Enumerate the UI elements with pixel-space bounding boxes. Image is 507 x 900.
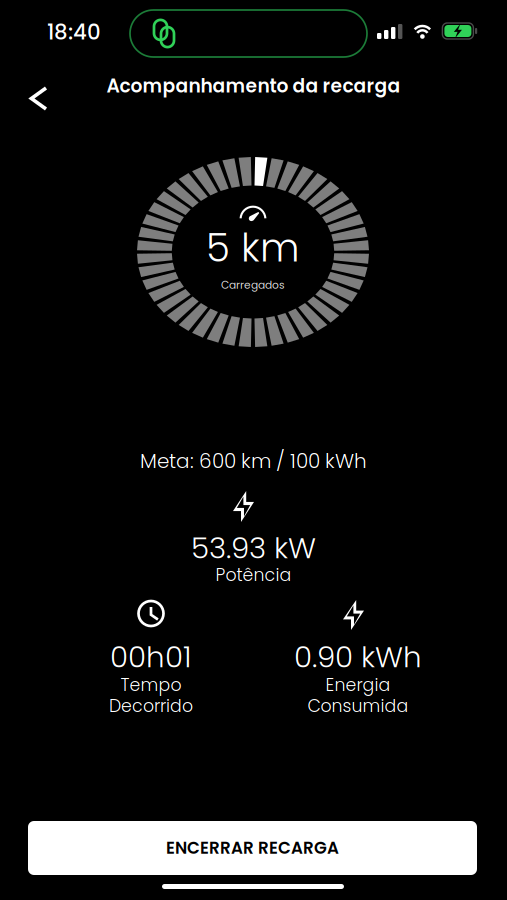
staticText: Potência	[215, 563, 291, 587]
staticText: Acompanhamento da recarga	[106, 73, 400, 99]
staticText: 18:40	[47, 17, 101, 47]
staticText: 53.93 kW	[191, 527, 316, 569]
staticText: 5 km	[206, 221, 300, 275]
staticText: Tempo	[120, 673, 181, 697]
staticText: 0.90 kWh	[294, 636, 422, 678]
staticText: Decorrido	[109, 694, 193, 718]
button[interactable]: Voltar	[11, 72, 66, 125]
staticText: Carregados	[221, 277, 285, 292]
button[interactable]: ENCERRAR RECARGA	[28, 821, 477, 875]
staticText: Consumida	[307, 694, 408, 718]
staticText: 00h01	[110, 636, 192, 678]
staticText: Meta: 600 km / 100 kWh	[140, 447, 367, 475]
staticText: Energia	[325, 673, 390, 697]
staticText: ENCERRAR RECARGA	[166, 836, 339, 860]
